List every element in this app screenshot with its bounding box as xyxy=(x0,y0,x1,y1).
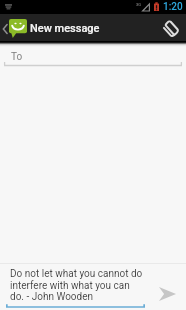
button[interactable]: Do not let what you cannot do interfere … xyxy=(0,263,150,310)
staticText: 1:20 xyxy=(163,1,183,13)
staticText: Do not let what you cannot do interfere … xyxy=(10,268,144,302)
staticText: To xyxy=(11,51,23,63)
button[interactable]: Attach xyxy=(158,14,186,42)
staticText: 3G xyxy=(136,2,141,7)
staticText: New message xyxy=(30,22,100,35)
button[interactable]: To xyxy=(0,47,186,67)
button[interactable]: Send xyxy=(150,263,186,310)
button[interactable]: Navigate up xyxy=(0,19,27,38)
